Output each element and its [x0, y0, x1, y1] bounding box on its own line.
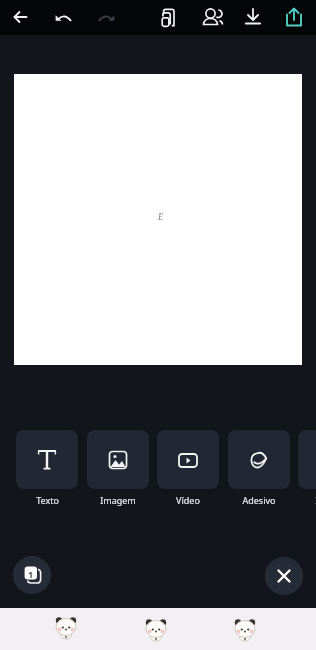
- button[interactable]: [298, 430, 316, 489]
- button[interactable]: [50, 0, 80, 35]
- staticText: Texto: [36, 494, 59, 506]
- button[interactable]: [16, 430, 78, 489]
- button[interactable]: [90, 0, 120, 35]
- button[interactable]: [157, 430, 219, 489]
- button[interactable]: [154, 0, 184, 35]
- button[interactable]: 1: [13, 556, 51, 594]
- button[interactable]: [139, 608, 173, 650]
- staticText: Imagem: [100, 494, 136, 506]
- staticText: E: [158, 211, 163, 222]
- button[interactable]: [279, 0, 309, 35]
- button[interactable]: [197, 0, 229, 35]
- button[interactable]: [228, 430, 290, 489]
- button[interactable]: [265, 557, 303, 595]
- staticText: 1: [28, 568, 34, 580]
- staticText: Vídeo: [176, 494, 200, 506]
- button[interactable]: [87, 430, 149, 489]
- button[interactable]: [6, 0, 36, 35]
- button[interactable]: [238, 0, 268, 35]
- button[interactable]: [49, 608, 83, 650]
- staticText: Ilustra: [315, 494, 316, 506]
- staticText: Adesivo: [242, 494, 276, 506]
- button[interactable]: [228, 608, 262, 650]
